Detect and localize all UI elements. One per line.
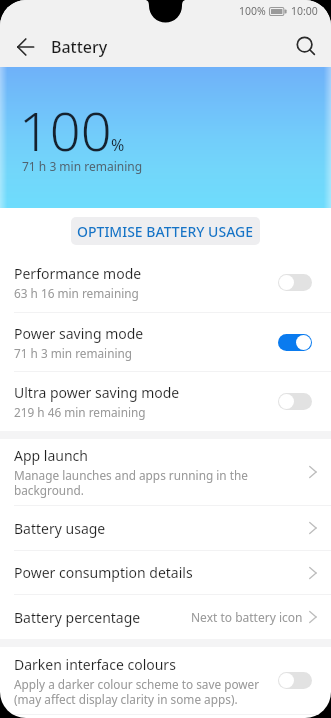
button[interactable]: Search: [286, 26, 327, 67]
button[interactable]: Performance mode: [0, 253, 331, 312]
staticText: 71 h 3 min remaining: [22, 158, 143, 174]
button[interactable]: Back: [0, 26, 51, 67]
button[interactable]: Battery percentage: [0, 595, 331, 639]
button[interactable]: Toggle: [278, 334, 312, 351]
staticText: Performance mode: [14, 264, 142, 283]
staticText: OPTIMISE BATTERY USAGE: [77, 222, 254, 241]
staticText: 71 h 3 min remaining: [14, 345, 133, 361]
button[interactable]: Toggle: [278, 393, 312, 410]
staticText: 100%: [239, 4, 266, 18]
button[interactable]: Ultra power saving mode: [0, 372, 331, 431]
staticText: 10:00: [291, 4, 318, 18]
staticText: App launch: [14, 446, 88, 465]
button[interactable]: Power saving mode: [0, 313, 331, 371]
button[interactable]: App launch: [0, 439, 331, 505]
staticText: Manage launches and apps running in the …: [14, 467, 248, 498]
staticText: %: [111, 134, 125, 156]
staticText: Power saving mode: [14, 324, 144, 343]
button[interactable]: Toggle: [278, 672, 312, 689]
staticText: Ultra power saving mode: [14, 383, 180, 402]
staticText: 219 h 46 min remaining: [14, 404, 146, 420]
button[interactable]: Toggle: [278, 274, 312, 291]
staticText: Battery usage: [14, 519, 106, 538]
staticText: Power consumption details: [14, 563, 193, 582]
button[interactable]: Darken interface colours: [0, 647, 331, 714]
staticText: 63 h 16 min remaining: [14, 285, 139, 301]
staticText: Next to battery icon: [191, 609, 303, 625]
staticText: Battery: [51, 36, 108, 58]
staticText: 100: [19, 93, 112, 167]
button[interactable]: Battery usage: [0, 506, 331, 550]
button[interactable]: OPTIMISE BATTERY USAGE: [71, 217, 260, 245]
staticText: Apply a darker colour scheme to save pow…: [14, 676, 260, 707]
button[interactable]: Power consumption details: [0, 551, 331, 594]
staticText: Darken interface colours: [14, 655, 176, 674]
staticText: Battery percentage: [14, 608, 141, 627]
